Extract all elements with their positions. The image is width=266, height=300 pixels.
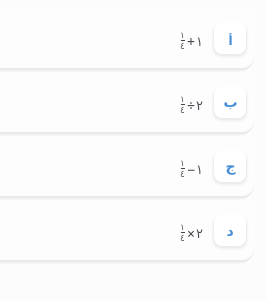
- staticText: ١: [180, 94, 185, 104]
- button[interactable]: Answer option: [214, 214, 246, 246]
- button[interactable]: ١: [0, 72, 254, 132]
- button[interactable]: Answer option: [214, 150, 246, 182]
- staticText: −: [187, 160, 196, 179]
- button[interactable]: ١: [0, 200, 254, 260]
- staticText: ٢: [196, 98, 203, 113]
- staticText: ÷: [187, 96, 196, 115]
- staticText: أ: [228, 34, 233, 48]
- staticText: ١: [196, 162, 203, 177]
- staticText: ٢: [196, 226, 203, 241]
- button[interactable]: ١: [0, 136, 254, 196]
- staticText: ب: [223, 94, 238, 110]
- staticText: ١: [180, 158, 185, 168]
- staticText: ٤: [180, 105, 185, 115]
- button[interactable]: ١: [0, 8, 254, 68]
- staticText: ١: [180, 222, 185, 232]
- staticText: ج: [225, 158, 236, 174]
- staticText: ١: [180, 30, 185, 40]
- staticText: د: [226, 223, 234, 239]
- staticText: ٤: [180, 169, 185, 179]
- staticText: +: [187, 32, 196, 51]
- staticText: ٤: [180, 41, 185, 51]
- staticText: ١: [196, 34, 203, 49]
- staticText: ×: [187, 224, 196, 243]
- button[interactable]: Answer option: [214, 22, 246, 54]
- staticText: ٤: [180, 233, 185, 243]
- button[interactable]: Answer option: [214, 86, 246, 118]
